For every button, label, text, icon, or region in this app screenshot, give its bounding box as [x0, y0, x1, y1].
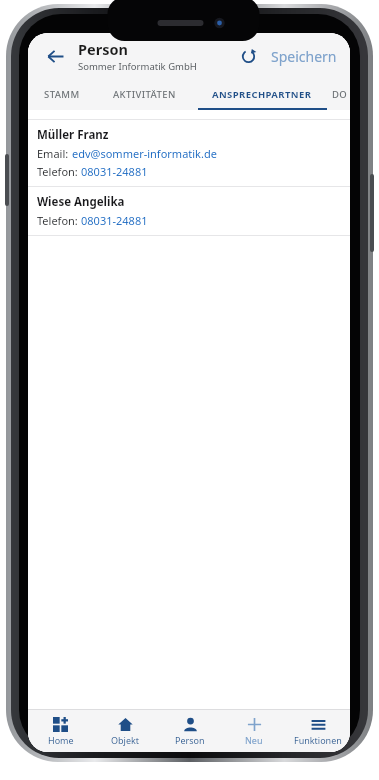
staticText: Wiese Angelika	[37, 194, 125, 210]
button[interactable]: AKTIVITÄTEN	[96, 79, 192, 110]
button[interactable]: Aktualisieren	[232, 40, 264, 72]
staticText: Sommer Informatik GmbH	[78, 60, 197, 73]
button[interactable]: STAMM	[28, 79, 96, 110]
staticText: Home	[48, 734, 74, 746]
button[interactable]: Zurück	[38, 39, 72, 73]
button[interactable]: Müller Franz	[28, 120, 350, 186]
button[interactable]: ANSPRECHPARTNER	[192, 79, 332, 110]
button[interactable]: Person	[158, 710, 222, 752]
staticText: Neu	[245, 734, 263, 746]
staticText: Email:	[37, 146, 72, 161]
staticText: Müller Franz	[37, 127, 109, 143]
staticText: AKTIVITÄTEN	[113, 88, 176, 101]
staticText: Person	[78, 39, 128, 59]
button[interactable]: DOKU	[332, 79, 350, 110]
button[interactable]: Speichern	[264, 42, 344, 71]
button[interactable]: Wiese Angelika	[28, 187, 350, 235]
staticText: 08031-24881	[81, 164, 148, 179]
staticText: 08031-24881	[81, 213, 148, 228]
staticText: Funktionen	[294, 734, 342, 746]
staticText: ANSPRECHPARTNER	[212, 88, 312, 101]
staticText: Person	[175, 734, 205, 746]
button[interactable]: Neu	[222, 710, 286, 752]
staticText: Objekt	[111, 734, 140, 746]
staticText: Telefon:	[37, 213, 81, 228]
button[interactable]: Home	[28, 710, 93, 752]
staticText: DOKU	[332, 88, 350, 101]
staticText: Telefon:	[37, 164, 81, 179]
button[interactable]: Funktionen	[286, 710, 350, 752]
button[interactable]: Objekt	[93, 710, 158, 752]
staticText: edv@sommer-informatik.de	[72, 146, 217, 161]
staticText: Speichern	[271, 47, 337, 66]
staticText: STAMM	[44, 88, 80, 101]
